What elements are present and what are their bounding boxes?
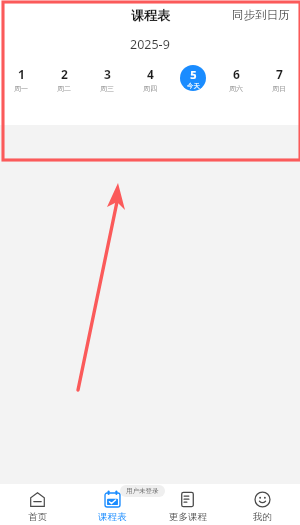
staticText: 更多课程 [169,511,207,521]
staticText: 周六 [229,84,243,93]
button[interactable]: 首页 [0,484,75,525]
button[interactable]: 4 [128,64,171,106]
button[interactable]: 6 [214,64,257,106]
staticText: 课程表 [98,511,127,521]
staticText: 周日 [272,84,286,93]
button[interactable]: 2 [42,64,85,106]
button[interactable]: 2025-9 [130,36,170,53]
staticText: 周二 [57,84,71,93]
staticText: 3 [104,66,111,82]
button[interactable]: 同步到日历 [232,8,300,22]
staticText: 周四 [143,84,157,93]
staticText: 用户未登录 [126,487,159,495]
button[interactable]: 7 [257,64,300,106]
button[interactable]: 5 [171,64,214,106]
staticText: 2 [61,66,68,82]
staticText: 4 [147,66,154,82]
staticText: 我的 [253,511,272,521]
staticText: 今天 [187,82,200,90]
button[interactable]: 课程表 [75,484,150,525]
staticText: 1 [18,66,25,82]
staticText: 周一 [14,84,28,93]
button[interactable]: 更多课程 [150,484,225,525]
button[interactable]: 我的 [225,484,300,525]
button[interactable]: 3 [85,64,128,106]
staticText: 5 [190,67,197,82]
staticText: 首页 [28,511,47,521]
button[interactable]: 用户未登录 [120,485,165,497]
button[interactable]: 课程表 [131,7,170,23]
button[interactable]: 1 [0,64,42,106]
staticText: 7 [276,66,283,82]
staticText: 周三 [100,84,114,93]
staticText: 6 [233,66,240,82]
